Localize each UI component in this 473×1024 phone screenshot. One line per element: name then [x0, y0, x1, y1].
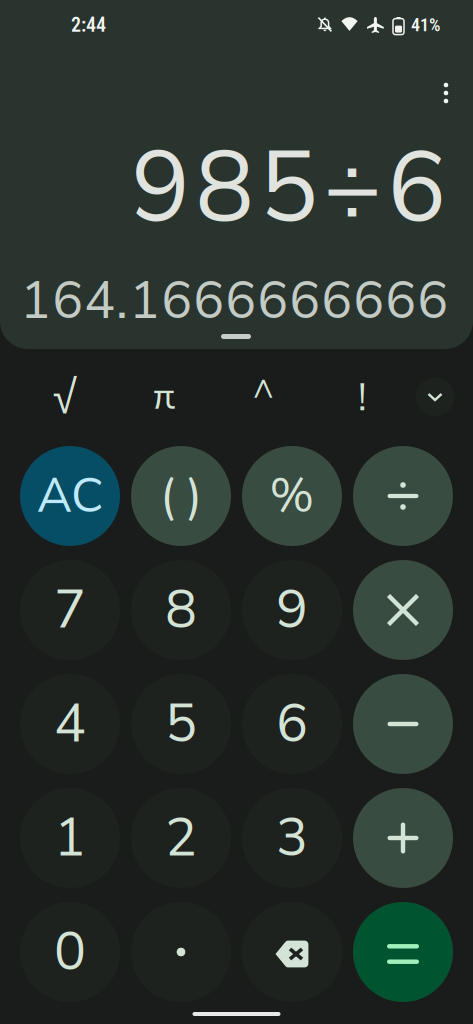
button[interactable]: 7 — [20, 560, 120, 660]
button[interactable]: Multiply — [353, 560, 453, 660]
staticText: 6 — [276, 688, 308, 760]
button[interactable]: Backspace — [242, 902, 342, 1002]
button[interactable]: 3 — [242, 788, 342, 888]
staticText: ^ — [252, 366, 274, 415]
staticText: √ — [53, 366, 77, 420]
button[interactable]: 4 — [20, 674, 120, 774]
button[interactable]: π — [115, 357, 214, 417]
staticText: 4 — [54, 688, 86, 760]
staticText: 7 — [54, 574, 86, 646]
button[interactable]: Plus — [353, 788, 453, 888]
staticText: 1 — [54, 802, 86, 874]
button[interactable]: 0 — [20, 902, 120, 1002]
button[interactable]: 2 — [131, 788, 231, 888]
staticText: 8 — [165, 574, 197, 646]
staticText: 2:44 — [71, 13, 106, 37]
button[interactable]: AC — [20, 446, 120, 546]
button[interactable]: More options — [423, 70, 469, 116]
staticText: 3 — [276, 802, 308, 874]
staticText: 41% — [411, 14, 440, 36]
button[interactable]: ^ — [214, 357, 313, 417]
staticText: 164.1666666666 — [20, 265, 448, 336]
staticText: 5 — [165, 688, 197, 760]
button[interactable]: % — [242, 446, 342, 546]
button[interactable]: 9 — [242, 560, 342, 660]
staticText: π — [154, 372, 175, 421]
button[interactable]: 5 — [131, 674, 231, 774]
button[interactable]: ( ) — [131, 446, 231, 546]
button[interactable]: 1 — [20, 788, 120, 888]
button[interactable]: ! — [313, 357, 412, 417]
staticText: ! — [358, 372, 367, 423]
button[interactable]: √ — [16, 357, 115, 417]
staticText: % — [269, 463, 314, 529]
staticText: 985÷6 — [131, 121, 446, 255]
staticText: ( ) — [160, 463, 202, 529]
staticText: 9 — [276, 574, 308, 646]
staticText: 2 — [165, 802, 197, 874]
staticText: AC — [37, 463, 103, 529]
button[interactable]: Minus — [353, 674, 453, 774]
button[interactable]: 6 — [242, 674, 342, 774]
button[interactable]: 8 — [131, 560, 231, 660]
button[interactable]: Divide — [353, 446, 453, 546]
button[interactable]: Equals — [353, 902, 453, 1002]
button[interactable]: Collapse — [416, 368, 454, 406]
staticText: 0 — [54, 916, 86, 988]
button[interactable]: Decimal point — [131, 902, 231, 1002]
